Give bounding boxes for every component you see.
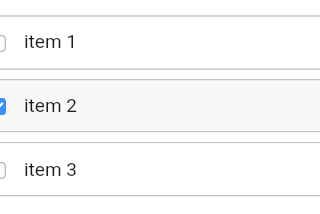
staticText: item 2 — [24, 94, 77, 116]
button[interactable]: item 1, not checked — [0, 16, 320, 69]
staticText: item 1 — [24, 30, 77, 52]
button[interactable]: item 2, checked — [0, 80, 320, 132]
other: item 2, checked — [0, 98, 6, 115]
other: item 1, not checked — [0, 35, 6, 52]
other: item 3, not checked — [0, 162, 6, 179]
button[interactable]: item 3, not checked — [0, 143, 320, 196]
staticText: item 3 — [24, 158, 77, 180]
